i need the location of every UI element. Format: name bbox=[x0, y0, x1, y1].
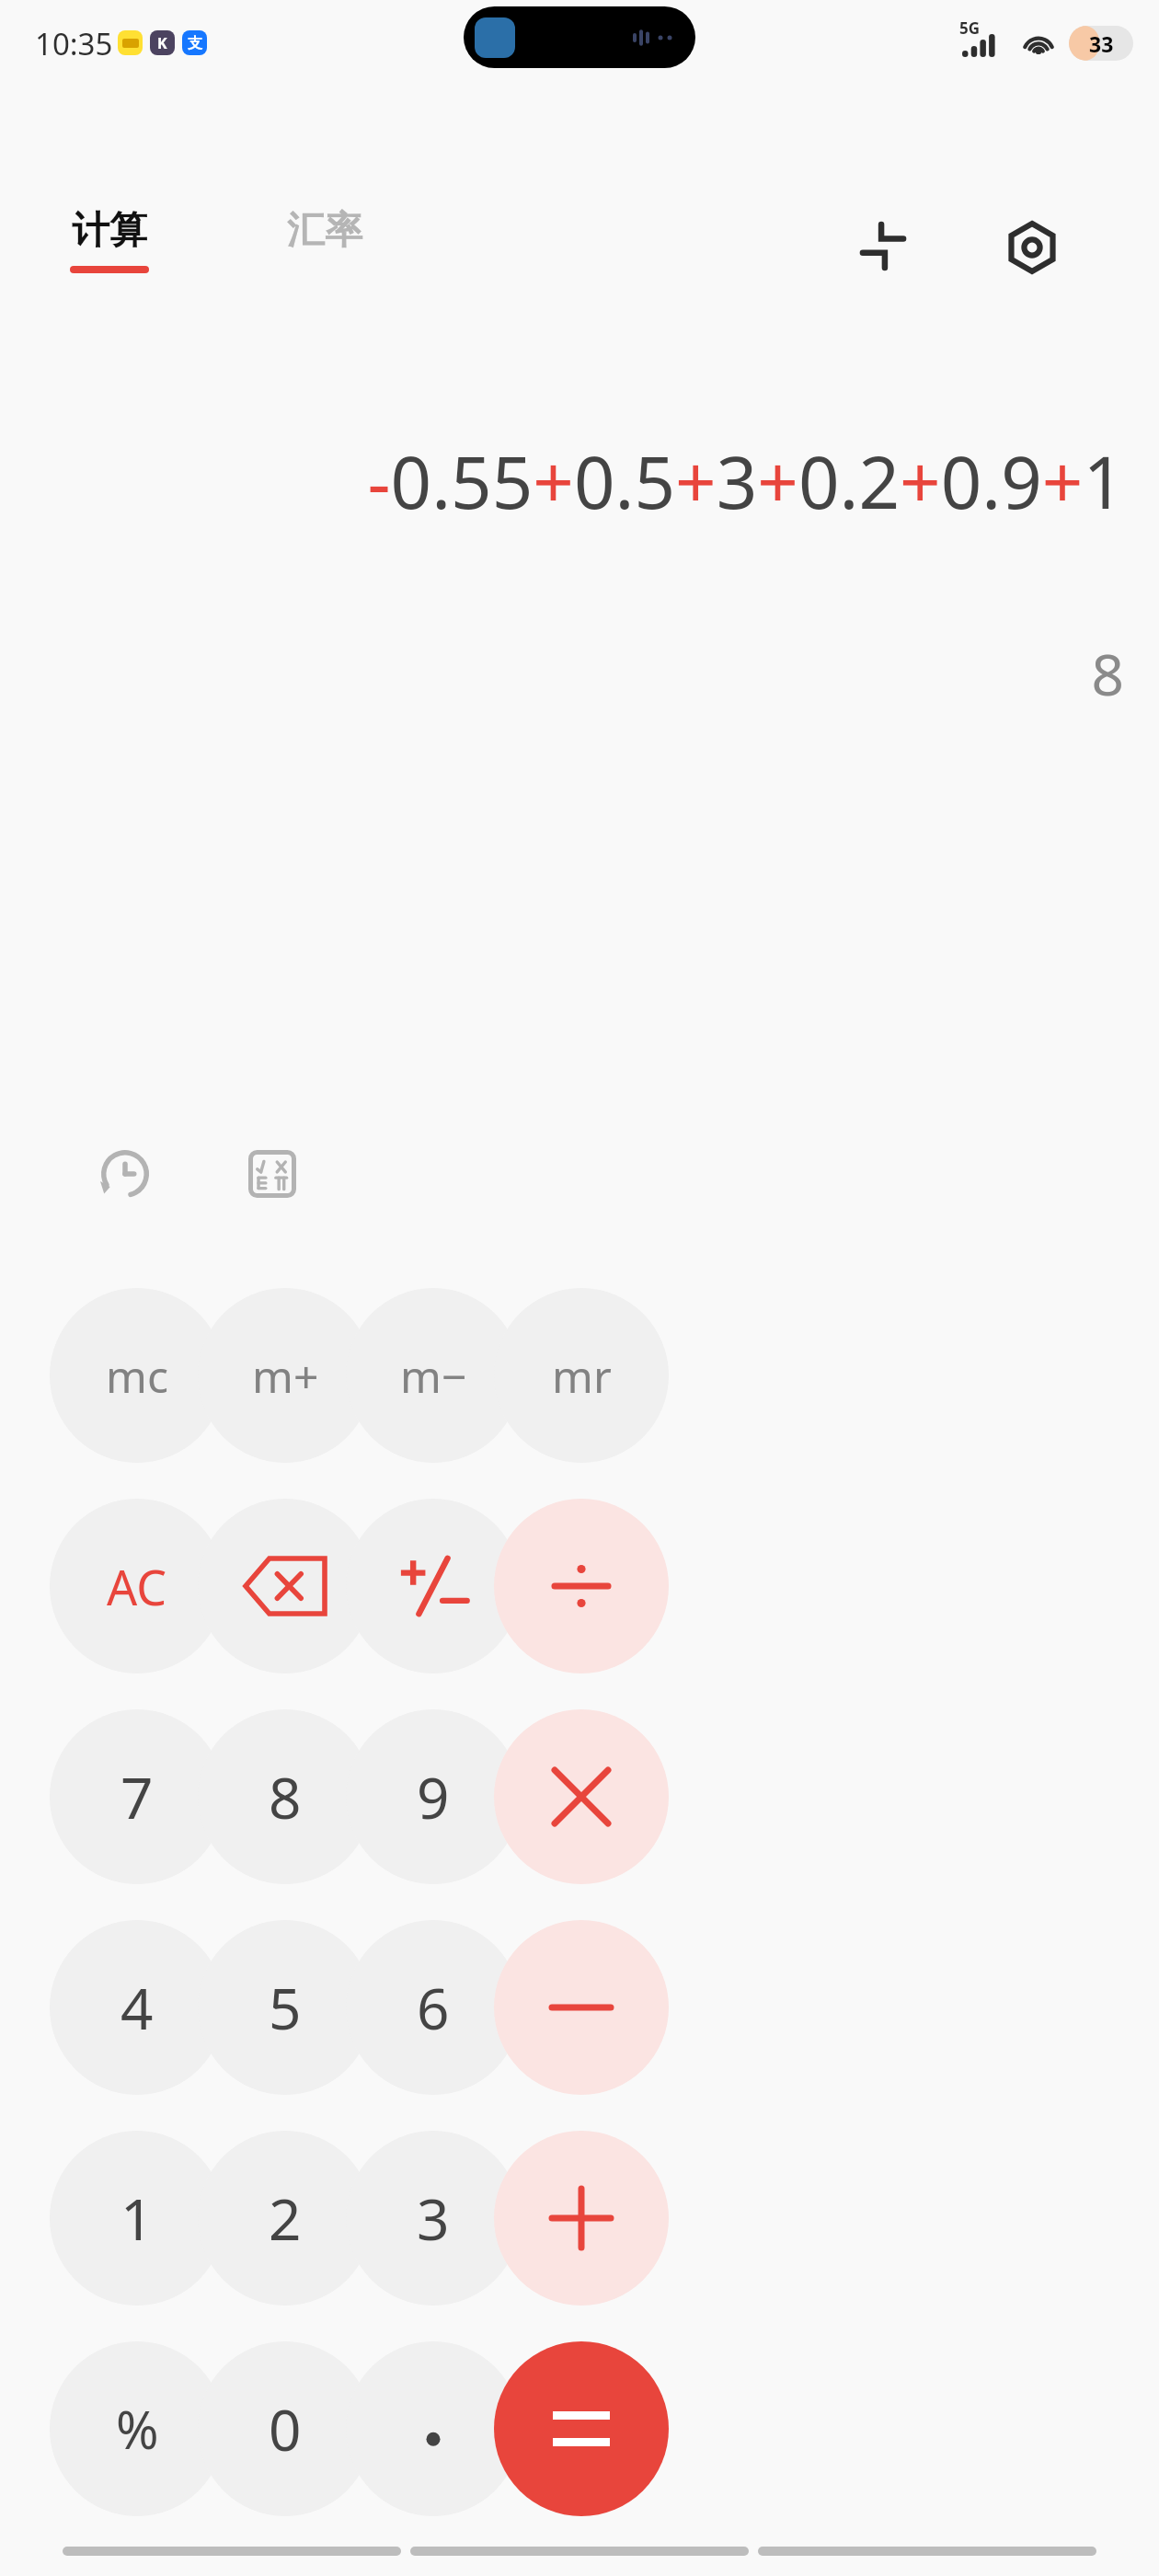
button[interactable]: 9 bbox=[346, 1709, 521, 1884]
button[interactable]: m+ bbox=[198, 1288, 373, 1463]
staticText: -0.55+0.5+3+0.2+0.9+1 bbox=[35, 432, 1124, 530]
staticText: 4 bbox=[120, 1969, 154, 2046]
staticText: % bbox=[116, 2394, 159, 2464]
staticText: 9 bbox=[417, 1758, 450, 1835]
button[interactable]: 4 bbox=[50, 1920, 224, 2095]
button[interactable]: Settings bbox=[992, 207, 1073, 288]
button[interactable]: 6 bbox=[346, 1920, 521, 2095]
button[interactable]: Scientific functions bbox=[228, 1130, 316, 1218]
staticText: 5 bbox=[269, 1969, 302, 2046]
button[interactable]: Equals bbox=[494, 2341, 669, 2516]
staticText: 3 bbox=[417, 2179, 450, 2257]
button[interactable]: 5 bbox=[198, 1920, 373, 2095]
staticText: 10:35 bbox=[35, 23, 113, 64]
button[interactable]: 2 bbox=[198, 2131, 373, 2306]
button[interactable]: 汇率 bbox=[287, 207, 362, 255]
staticText: 5G bbox=[959, 17, 981, 39]
staticText: 计算 bbox=[72, 207, 147, 255]
button[interactable]: Backspace bbox=[198, 1499, 373, 1673]
button[interactable]: Multiply bbox=[494, 1709, 669, 1884]
staticText: 汇率 bbox=[287, 207, 362, 255]
button[interactable]: mc bbox=[50, 1288, 224, 1463]
staticText: mc bbox=[106, 1346, 168, 1406]
staticText: 7 bbox=[120, 1758, 154, 1835]
staticText: 2 bbox=[269, 2179, 302, 2257]
button[interactable]: Plus bbox=[494, 2131, 669, 2306]
staticText: K bbox=[157, 33, 167, 53]
staticText: 8 bbox=[269, 1758, 302, 1835]
button[interactable]: m− bbox=[346, 1288, 521, 1463]
staticText: m− bbox=[400, 1346, 467, 1406]
button[interactable] bbox=[346, 2341, 521, 2516]
staticText: 支 bbox=[188, 34, 202, 52]
button[interactable]: Minus bbox=[494, 1920, 669, 2095]
staticText: mr bbox=[552, 1346, 612, 1406]
staticText: 6 bbox=[417, 1969, 450, 2046]
staticText: AC bbox=[107, 1554, 167, 1619]
button[interactable]: 0 bbox=[198, 2341, 373, 2516]
button[interactable]: 3 bbox=[346, 2131, 521, 2306]
button[interactable]: 计算 bbox=[70, 207, 149, 273]
button[interactable]: 8 bbox=[198, 1709, 373, 1884]
button[interactable]: mr bbox=[494, 1288, 669, 1463]
staticText: 1 bbox=[120, 2179, 154, 2257]
button[interactable]: % bbox=[50, 2341, 224, 2516]
staticText: m+ bbox=[252, 1346, 319, 1406]
button[interactable]: Toggle sign bbox=[346, 1499, 521, 1673]
staticText: 8 bbox=[35, 635, 1124, 712]
button[interactable]: History bbox=[81, 1130, 169, 1218]
button[interactable]: AC bbox=[50, 1499, 224, 1673]
button[interactable]: 1 bbox=[50, 2131, 224, 2306]
staticText: 0 bbox=[269, 2390, 302, 2467]
staticText: 33 bbox=[1089, 29, 1114, 58]
button[interactable]: Divide bbox=[494, 1499, 669, 1673]
button[interactable]: Collapse bbox=[846, 211, 920, 284]
button[interactable]: 7 bbox=[50, 1709, 224, 1884]
